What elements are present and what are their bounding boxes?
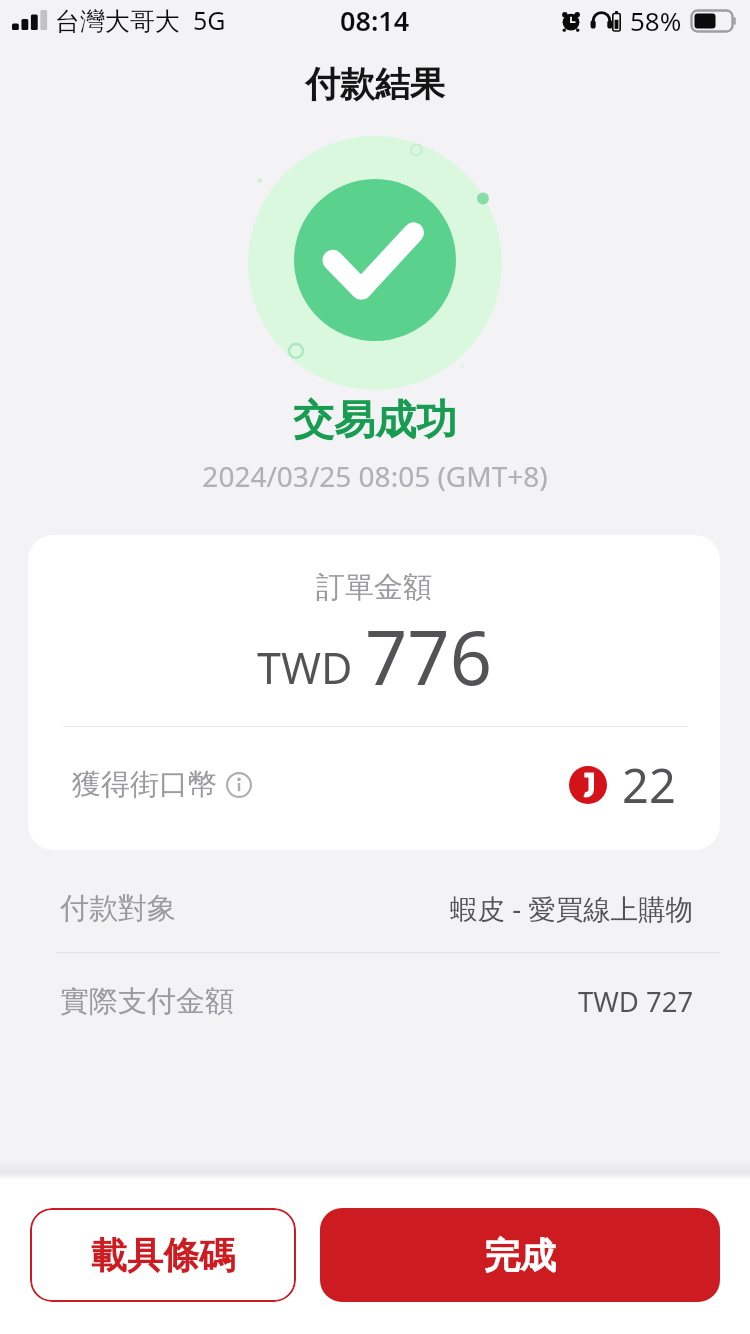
staticText: 台灣大哥大 5G <box>55 3 226 37</box>
button[interactable]: 付款對象 <box>0 865 750 953</box>
staticText: 776 <box>365 606 492 707</box>
other: 街口幣 <box>569 766 607 804</box>
staticText: 22 <box>622 753 676 817</box>
button[interactable]: 實際支付金額 <box>0 953 750 1050</box>
button[interactable]: 完成 <box>320 1208 720 1302</box>
staticText: 獲得街口幣 <box>72 766 217 803</box>
staticText: 付款對象 <box>60 890 176 927</box>
staticText: 08:14 <box>340 2 410 39</box>
staticText: 交易成功 <box>293 395 457 447</box>
staticText: 付款結果 <box>305 62 445 106</box>
staticText: 載具條碼 <box>91 1233 235 1278</box>
button[interactable]: 載具條碼 <box>30 1208 296 1302</box>
staticText: 58% <box>630 3 682 38</box>
staticText: 訂單金額 <box>28 569 720 606</box>
staticText: 實際支付金額 <box>60 983 234 1020</box>
staticText: 蝦皮 - 愛買線上購物 <box>450 890 694 928</box>
other: 說明 <box>226 772 252 798</box>
staticText: 2024/03/25 08:05 (GMT+8) <box>202 457 548 495</box>
staticText: TWD 727 <box>578 983 694 1020</box>
staticText: TWD <box>257 638 353 697</box>
staticText: 完成 <box>484 1233 556 1278</box>
